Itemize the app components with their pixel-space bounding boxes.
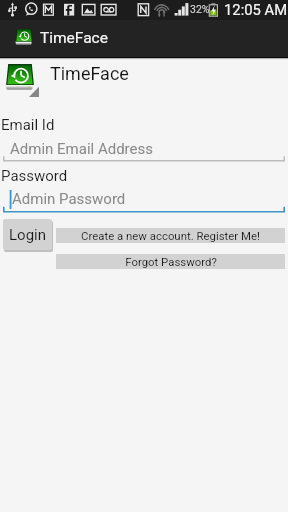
staticText: Admin Password <box>12 190 126 208</box>
staticText: TimeFace <box>40 29 108 47</box>
staticText: 12:05 AM <box>224 1 288 18</box>
button[interactable]: Create a new account. Register Me! <box>56 228 285 243</box>
button[interactable]: Forgot Password? <box>56 254 285 269</box>
button[interactable]: Admin Password <box>3 190 285 213</box>
staticText: Forgot Password? <box>125 255 217 268</box>
staticText: Login <box>9 226 46 244</box>
staticText: Email Id <box>1 116 55 134</box>
button[interactable]: Expand <box>29 86 39 97</box>
button[interactable]: Login <box>3 219 52 250</box>
staticText: 32% <box>190 3 210 15</box>
staticText: TimeFace <box>50 63 129 84</box>
button[interactable]: Admin Email Address <box>3 140 285 162</box>
staticText: Create a new account. Register Me! <box>81 229 260 242</box>
staticText: Admin Email Address <box>10 140 153 158</box>
staticText: Password <box>1 167 68 185</box>
